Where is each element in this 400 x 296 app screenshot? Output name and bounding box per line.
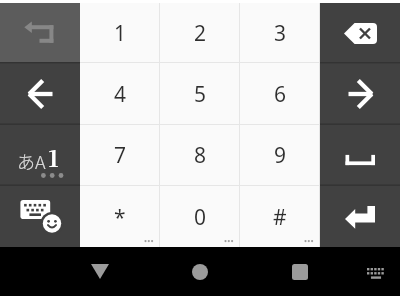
staticText: 4 (114, 80, 127, 109)
button[interactable]: 5 (160, 63, 240, 125)
button[interactable]: Move cursor left (0, 63, 80, 125)
staticText: 2 (194, 19, 207, 48)
button[interactable]: Enter (320, 186, 400, 248)
button[interactable]: 0 (160, 186, 240, 248)
button[interactable]: Undo (0, 3, 80, 63)
staticText: 5 (194, 80, 207, 109)
button[interactable]: 7 (80, 125, 160, 186)
staticText: 3 (274, 19, 287, 48)
staticText: 6 (274, 80, 287, 109)
button[interactable]: Recent apps (260, 247, 340, 296)
button[interactable]: 6 (240, 63, 320, 125)
button[interactable]: Change keyboard (348, 247, 400, 296)
button[interactable]: 2 (160, 3, 240, 63)
button[interactable]: * (80, 186, 160, 248)
button[interactable]: Space (320, 125, 400, 186)
staticText: 1 (48, 141, 59, 174)
staticText: 7 (114, 141, 127, 170)
button[interactable]: Emoji keyboard (0, 186, 80, 248)
button[interactable]: Move cursor right (320, 63, 400, 125)
staticText: 1 (114, 19, 127, 48)
staticText: あA (17, 148, 46, 174)
button[interactable]: Hide keyboard (60, 247, 140, 296)
button[interactable]: Backspace (320, 3, 400, 63)
button[interactable]: 1 (80, 3, 160, 63)
staticText: 0 (194, 203, 207, 232)
button[interactable]: 9 (240, 125, 320, 186)
staticText: 8 (194, 141, 207, 170)
button[interactable]: 3 (240, 3, 320, 63)
staticText: # (273, 203, 287, 232)
button[interactable]: 4 (80, 63, 160, 125)
staticText: 9 (274, 141, 287, 170)
button[interactable]: Home (160, 247, 240, 296)
button[interactable]: Switch input mode (0, 125, 80, 186)
button[interactable]: 8 (160, 125, 240, 186)
button[interactable]: # (240, 186, 320, 248)
staticText: * (114, 203, 126, 232)
